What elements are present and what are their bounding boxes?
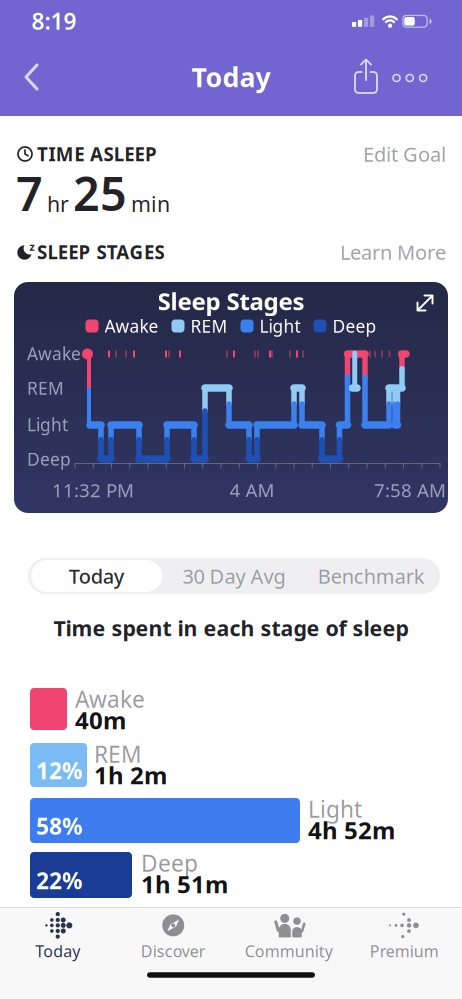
staticText: Light [259, 314, 300, 337]
staticText: 4 AM [229, 478, 274, 502]
staticText: Deep [141, 848, 198, 878]
staticText: Awake [27, 342, 81, 365]
button[interactable]: Today [0, 0, 462, 999]
staticText: 1h 51m [141, 868, 228, 900]
staticText: Deep [332, 314, 376, 337]
staticText: 7 [16, 162, 43, 224]
button[interactable]: Discover [115, 903, 231, 969]
staticText: REM [190, 314, 227, 337]
staticText: Today [35, 940, 80, 962]
staticText: 8:19 [31, 6, 76, 36]
staticText: Today [191, 59, 270, 95]
staticText: Edit Goal [363, 141, 446, 167]
staticText: Community [245, 940, 333, 962]
staticText: 4h 52m [308, 814, 395, 846]
button[interactable]: 30 Day Avg [0, 0, 462, 999]
button[interactable]: Today [0, 903, 115, 969]
staticText: 40m [75, 704, 126, 736]
staticText: min [131, 190, 170, 218]
staticText: 11:32 PM [52, 478, 134, 502]
staticText: Learn More [340, 239, 446, 265]
button[interactable] [14, 282, 448, 513]
staticText: Benchmark [318, 563, 425, 589]
staticText: Discover [141, 940, 206, 962]
staticText: Premium [370, 940, 439, 962]
button[interactable] [0, 0, 462, 999]
button[interactable]: Community [231, 903, 346, 969]
staticText: 30 Day Avg [182, 563, 285, 589]
staticText: 25 [73, 162, 127, 224]
staticText: 58% [36, 811, 82, 841]
staticText: Deep [27, 447, 71, 470]
staticText: hr [47, 190, 69, 218]
staticText: 1h 2m [94, 759, 167, 791]
staticText: TIME ASLEEP [37, 142, 157, 166]
button[interactable] [0, 0, 462, 999]
staticText: REM [94, 739, 142, 769]
staticText: Sleep Stages [157, 285, 304, 317]
button[interactable]: Premium [346, 903, 462, 969]
staticText: 7:58 AM [374, 478, 446, 502]
staticText: Today [69, 563, 125, 589]
staticText: SLEEP STAGES [37, 240, 164, 264]
staticText: 12% [36, 755, 82, 785]
staticText: Light [27, 413, 68, 436]
staticText: Time spent in each stage of sleep [53, 614, 408, 642]
button[interactable]: Benchmark [0, 0, 462, 999]
staticText: z [29, 239, 34, 254]
staticText: Light [308, 794, 362, 824]
staticText: Awake [75, 684, 145, 714]
button[interactable] [0, 0, 462, 999]
staticText: REM [27, 376, 64, 399]
button[interactable]: Learn More [0, 0, 462, 999]
staticText: Awake [104, 314, 158, 337]
staticText: 22% [36, 865, 82, 895]
button[interactable]: Edit Goal [0, 0, 462, 999]
